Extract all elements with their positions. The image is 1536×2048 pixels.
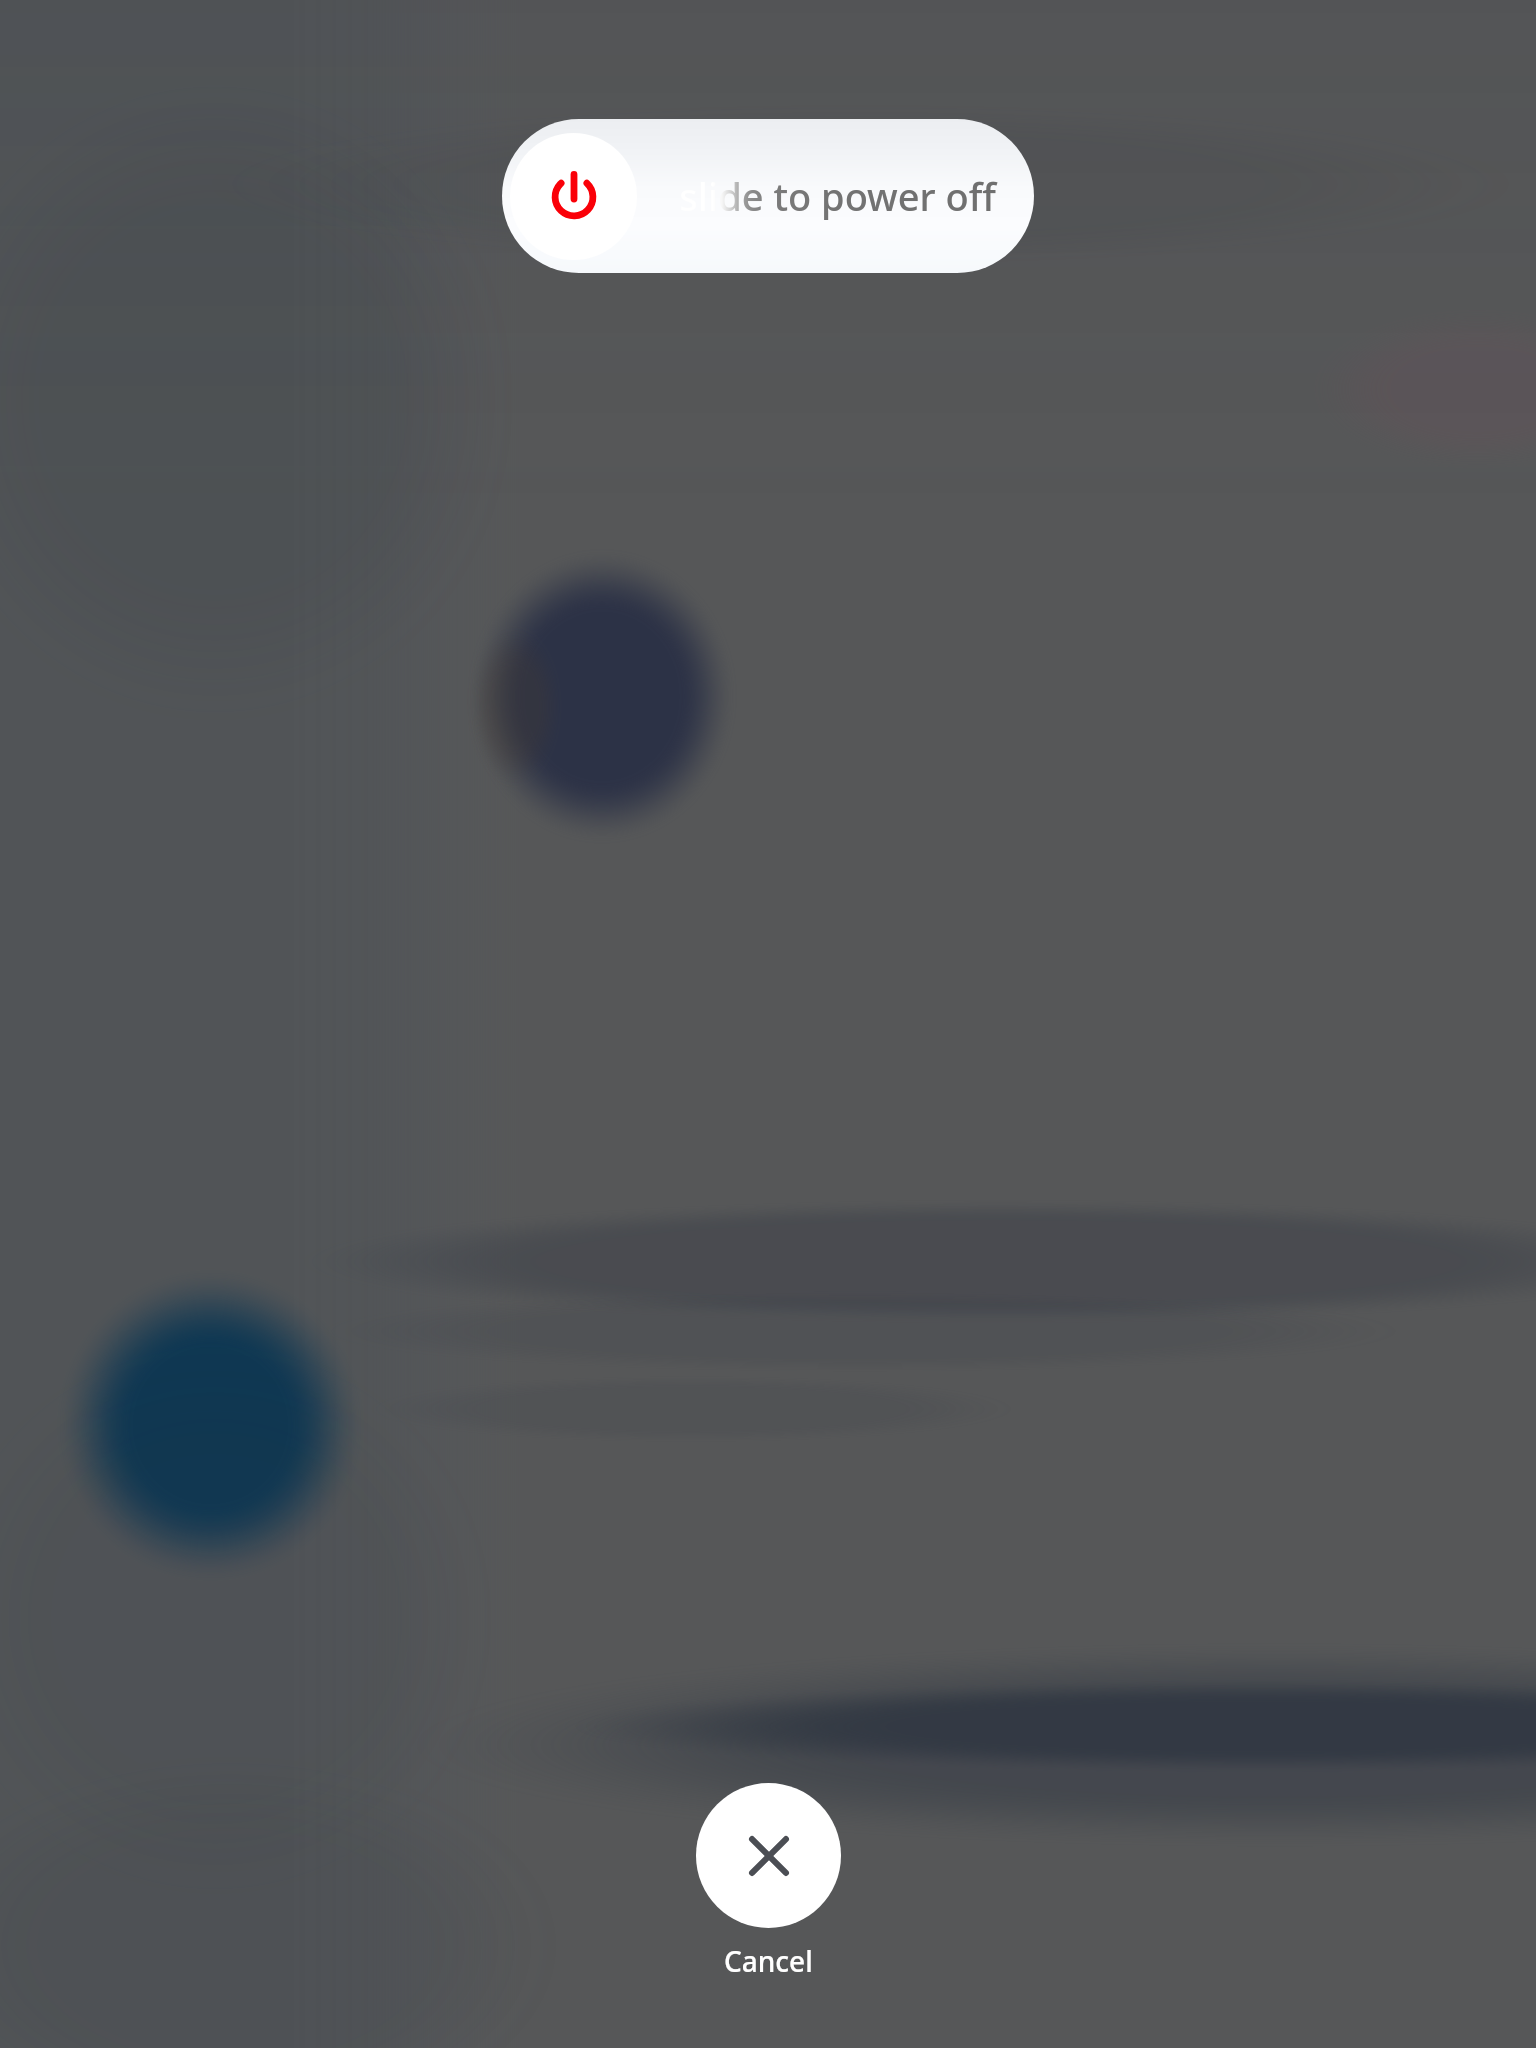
staticText: Cancel bbox=[724, 1942, 813, 1980]
button[interactable]: slide to power off bbox=[502, 119, 1034, 273]
button[interactable]: Cancel bbox=[696, 1783, 841, 1928]
staticText: slide to power off bbox=[679, 170, 996, 222]
button[interactable]: Slide to power off bbox=[510, 133, 637, 260]
